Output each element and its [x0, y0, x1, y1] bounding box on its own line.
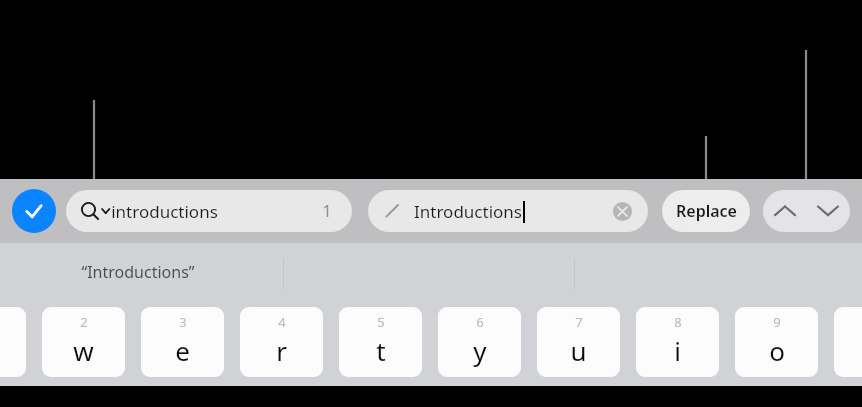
button[interactable]: Introductions [368, 190, 648, 232]
button[interactable]: 4 [240, 307, 323, 377]
staticText: e [175, 333, 190, 368]
staticText: introductions [111, 200, 218, 223]
button[interactable]: 0 [834, 307, 862, 377]
button[interactable]: 9 [735, 307, 818, 377]
staticText: 8 [674, 313, 682, 331]
staticText: “Introductions” [81, 261, 195, 283]
staticText: 6 [476, 313, 484, 331]
staticText: i [674, 333, 681, 368]
button[interactable]: Next result [806, 190, 850, 232]
staticText: 7 [575, 313, 583, 331]
button[interactable]: Previous result [763, 190, 806, 232]
button[interactable]: 5 [339, 307, 422, 377]
button[interactable]: 3 [141, 307, 224, 377]
button[interactable]: 6 [438, 307, 521, 377]
staticText: 3 [179, 313, 187, 331]
staticText: r [276, 333, 287, 368]
staticText: 1 [322, 200, 332, 222]
staticText: 2 [80, 313, 88, 331]
button[interactable]: 1 [0, 307, 26, 377]
staticText: 9 [773, 313, 781, 331]
button[interactable]: Done [12, 189, 56, 233]
button[interactable]: 2 [42, 307, 125, 377]
button[interactable]: Replace [662, 190, 750, 232]
button[interactable]: Clear text [608, 197, 636, 225]
button[interactable]: introductions [66, 190, 352, 232]
staticText: 5 [377, 313, 385, 331]
staticText: u [570, 333, 587, 368]
staticText: y [473, 333, 487, 368]
staticText: Introductions [414, 200, 522, 223]
staticText: 4 [278, 313, 286, 331]
staticText: Replace [676, 200, 737, 222]
button[interactable]: 8 [636, 307, 719, 377]
staticText: t [376, 333, 386, 368]
staticText: o [769, 333, 785, 368]
staticText: w [73, 333, 94, 368]
button[interactable]: 7 [537, 307, 620, 377]
button[interactable]: “Introductions” [0, 243, 283, 300]
